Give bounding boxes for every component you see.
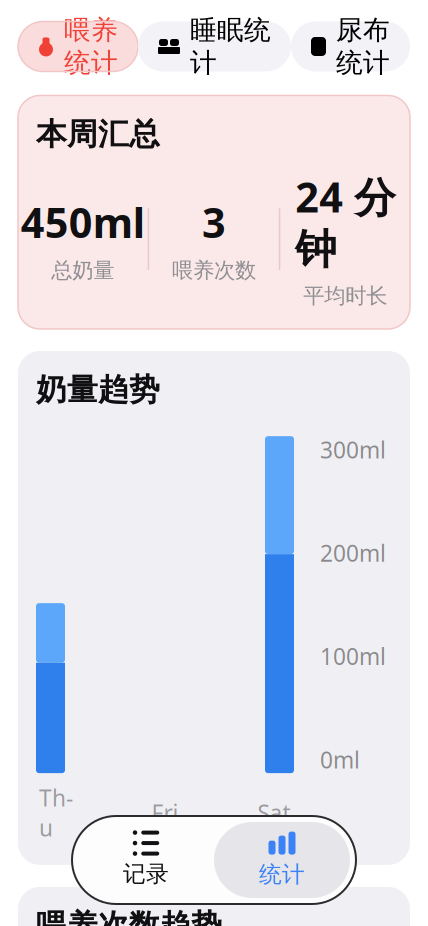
button[interactable]: 喂养统计 <box>18 21 138 71</box>
staticText: 总奶量 <box>51 257 114 284</box>
staticText: Thu <box>39 783 73 843</box>
staticText: 尿布统计 <box>336 14 390 79</box>
button[interactable]: 尿布统计 <box>291 21 410 71</box>
staticText: 200ml <box>320 538 386 568</box>
staticText: 450ml <box>21 194 145 249</box>
staticText: 睡眠统计 <box>190 14 271 79</box>
staticText: 本周汇总 <box>36 115 160 153</box>
staticText: 统计 <box>259 861 305 888</box>
staticText: Fri <box>151 798 178 828</box>
button[interactable]: 记录 <box>78 822 214 898</box>
staticText: 300ml <box>320 435 386 465</box>
staticText: 喂养次数 <box>172 257 256 284</box>
staticText: 平均时长 <box>303 283 387 309</box>
staticText: 记录 <box>123 860 169 888</box>
staticText: 24 分钟 <box>295 169 395 275</box>
staticText: 奶量趋势 <box>36 371 160 409</box>
staticText: 喂养统计 <box>64 14 118 79</box>
button[interactable]: 睡眠统计 <box>138 21 291 71</box>
staticText: 100ml <box>320 641 386 671</box>
button[interactable]: 统计 <box>214 822 350 898</box>
staticText: 喂养次数趋势 <box>36 907 222 926</box>
staticText: 0ml <box>320 745 360 775</box>
staticText: Sat <box>257 798 290 828</box>
staticText: 3 <box>202 194 226 249</box>
